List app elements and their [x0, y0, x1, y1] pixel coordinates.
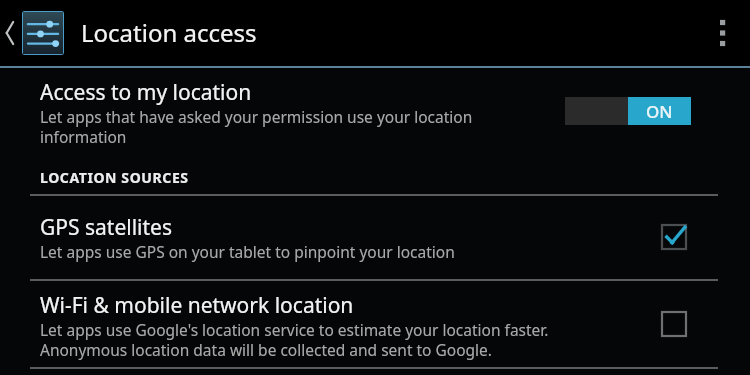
- staticText: Location access: [81, 16, 257, 49]
- button[interactable]: Wi-Fi and mobile network location, unche…: [650, 300, 698, 348]
- button[interactable]: GPS satellites: [0, 197, 750, 279]
- button[interactable]: Wi-Fi & mobile network location: [0, 282, 750, 367]
- button[interactable]: Navigate up: [2, 0, 74, 66]
- staticText: LOCATION SOURCES: [40, 168, 189, 187]
- button[interactable]: More options: [696, 0, 750, 66]
- staticText: Let apps that have asked your permission…: [40, 106, 473, 148]
- staticText: ON: [646, 100, 673, 123]
- staticText: GPS satellites: [40, 213, 172, 242]
- staticText: Wi-Fi & mobile network location: [40, 291, 354, 320]
- staticText: Let apps use Google's location service t…: [40, 319, 549, 361]
- staticText: Access to my location: [40, 78, 252, 107]
- button[interactable]: Access to my location, on: [565, 97, 691, 125]
- button[interactable]: GPS satellites, checked: [650, 213, 698, 261]
- button[interactable]: Access to my location: [0, 68, 750, 158]
- staticText: Let apps use GPS on your tablet to pinpo…: [40, 241, 455, 262]
